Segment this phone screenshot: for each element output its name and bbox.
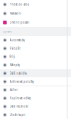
button[interactable]: Kopírovat odkaz xyxy=(0,94,71,102)
button[interactable]: Sdílet xyxy=(0,86,71,94)
staticText: Bílý xyxy=(10,55,15,58)
staticText: Upravit xyxy=(3,30,12,33)
staticText: Vylepšit xyxy=(10,47,21,50)
button[interactable]: Bílý xyxy=(0,53,71,61)
staticText: Archivovat položky xyxy=(10,80,34,83)
staticText: Uložit kopii xyxy=(10,113,26,117)
staticText: Změnit pozadí xyxy=(10,21,30,24)
button[interactable]: Uložit kopii xyxy=(0,111,71,119)
staticText: Další nabídky xyxy=(10,72,27,75)
button[interactable]: Nálepky xyxy=(0,61,71,69)
button[interactable]: Automaticky xyxy=(0,36,71,44)
staticText: Nastavení xyxy=(10,12,22,15)
staticText: Přidat do alba xyxy=(10,3,29,6)
staticText: Další možnosti xyxy=(10,105,29,108)
staticText: Sdílet xyxy=(10,88,18,92)
button[interactable]: Změnit pozadí xyxy=(0,18,71,27)
button[interactable]: Další možnosti xyxy=(0,102,71,111)
button[interactable]: Přidat do alba xyxy=(0,0,71,9)
staticText: Kopírovat odkaz xyxy=(10,96,31,100)
button[interactable]: Vylepšit xyxy=(0,44,71,53)
button[interactable]: Další nabídky xyxy=(0,69,71,77)
button[interactable]: Nastavení xyxy=(0,9,71,18)
staticText: Automaticky xyxy=(10,38,25,42)
staticText: Nálepky xyxy=(10,63,20,67)
button[interactable]: Archivovat položky xyxy=(0,77,71,86)
